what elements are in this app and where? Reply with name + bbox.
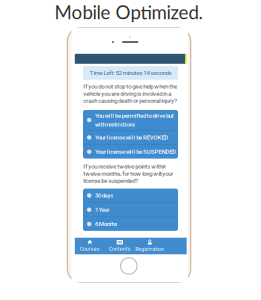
staticText: Time Left: 52 minutes 14 seconds [89, 69, 171, 76]
staticText: If you do not stop to give help when the [83, 83, 177, 90]
button[interactable]: Your license will be REVOKED [83, 131, 178, 144]
staticText: Contents [109, 246, 131, 252]
staticText: with restrictions [95, 121, 135, 128]
button[interactable]: Registration [135, 238, 165, 254]
staticText: crash causing death or personal injury? [83, 97, 177, 104]
staticText: vehicle you are driving is involved in a [83, 90, 171, 97]
staticText: license be suspended? [83, 177, 138, 184]
button[interactable]: 30 days [83, 189, 178, 202]
staticText: If you receive twelve points within [83, 163, 166, 170]
button[interactable]: Your license will be SUSPENDED [83, 145, 178, 159]
staticText: Registration [135, 246, 164, 252]
staticText: 6 Months [95, 220, 117, 227]
button[interactable]: 1 Year [83, 203, 178, 217]
staticText: 30 days [95, 192, 113, 199]
staticText: Courses [80, 246, 100, 252]
button[interactable]: 6 Months [83, 217, 178, 231]
button[interactable]: Courses [75, 238, 105, 254]
staticText: twelve months, for how long will your [83, 170, 173, 177]
staticText: Your license will be SUSPENDED [95, 148, 176, 155]
staticText: Mobile Optimized. [54, 1, 202, 23]
staticText: 1 Year [95, 206, 109, 213]
button[interactable]: You will be permitted to drive but [83, 110, 178, 130]
staticText: Your license will be REVOKED [95, 134, 168, 141]
button[interactable]: Contents [105, 238, 135, 254]
staticText: You will be permitted to drive but [95, 112, 174, 119]
